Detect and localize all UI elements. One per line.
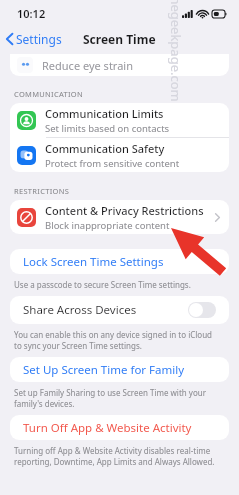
- staticText: Share Across Devices: [23, 302, 188, 318]
- button[interactable]: Communication Safety: [10, 138, 229, 172]
- button[interactable]: Settings: [0, 28, 70, 50]
- button[interactable]: Share Across Devices toggle: [188, 302, 216, 318]
- staticText: Use a passcode to secure Screen Time set…: [14, 279, 191, 290]
- button[interactable]: Communication Limits: [10, 103, 229, 137]
- staticText: Communication Limits: [45, 106, 164, 121]
- button[interactable]: Content & Privacy Restrictions: [10, 200, 229, 234]
- staticText: Set up Family Sharing to use Screen Time…: [14, 387, 206, 409]
- button[interactable]: Turn Off App & Website Activity: [10, 415, 229, 440]
- staticText: Lock Screen Time Settings: [23, 254, 164, 270]
- staticText: COMMUNICATION: [14, 89, 83, 99]
- staticText: RESTRICTIONS: [14, 186, 70, 196]
- staticText: Block inappropriate content: [45, 219, 170, 232]
- staticText: Turning off App & Website Activity disab…: [14, 445, 215, 467]
- button[interactable]: Reduce eye strain: [10, 54, 229, 76]
- staticText: Screen Time: [83, 31, 156, 47]
- staticText: Turn Off App & Website Activity: [23, 420, 192, 436]
- staticText: 10:12: [17, 6, 46, 21]
- staticText: Communication Safety: [45, 141, 165, 156]
- staticText: Set Up Screen Time for Family: [23, 362, 185, 378]
- staticText: Protect from sensitive content: [45, 157, 180, 170]
- button[interactable]: Lock Screen Time Settings: [10, 249, 229, 274]
- staticText: @thegeekpage.com: [167, 0, 185, 102]
- staticText: Settings: [16, 31, 62, 47]
- staticText: Content & Privacy Restrictions: [45, 203, 204, 218]
- staticText: You can enable this on any device signed…: [14, 329, 213, 351]
- staticText: Set limits based on contacts: [45, 122, 170, 135]
- staticText: Reduce eye strain: [42, 58, 133, 73]
- button[interactable]: Share Across Devices: [10, 296, 229, 324]
- button[interactable]: Set Up Screen Time for Family: [10, 357, 229, 382]
